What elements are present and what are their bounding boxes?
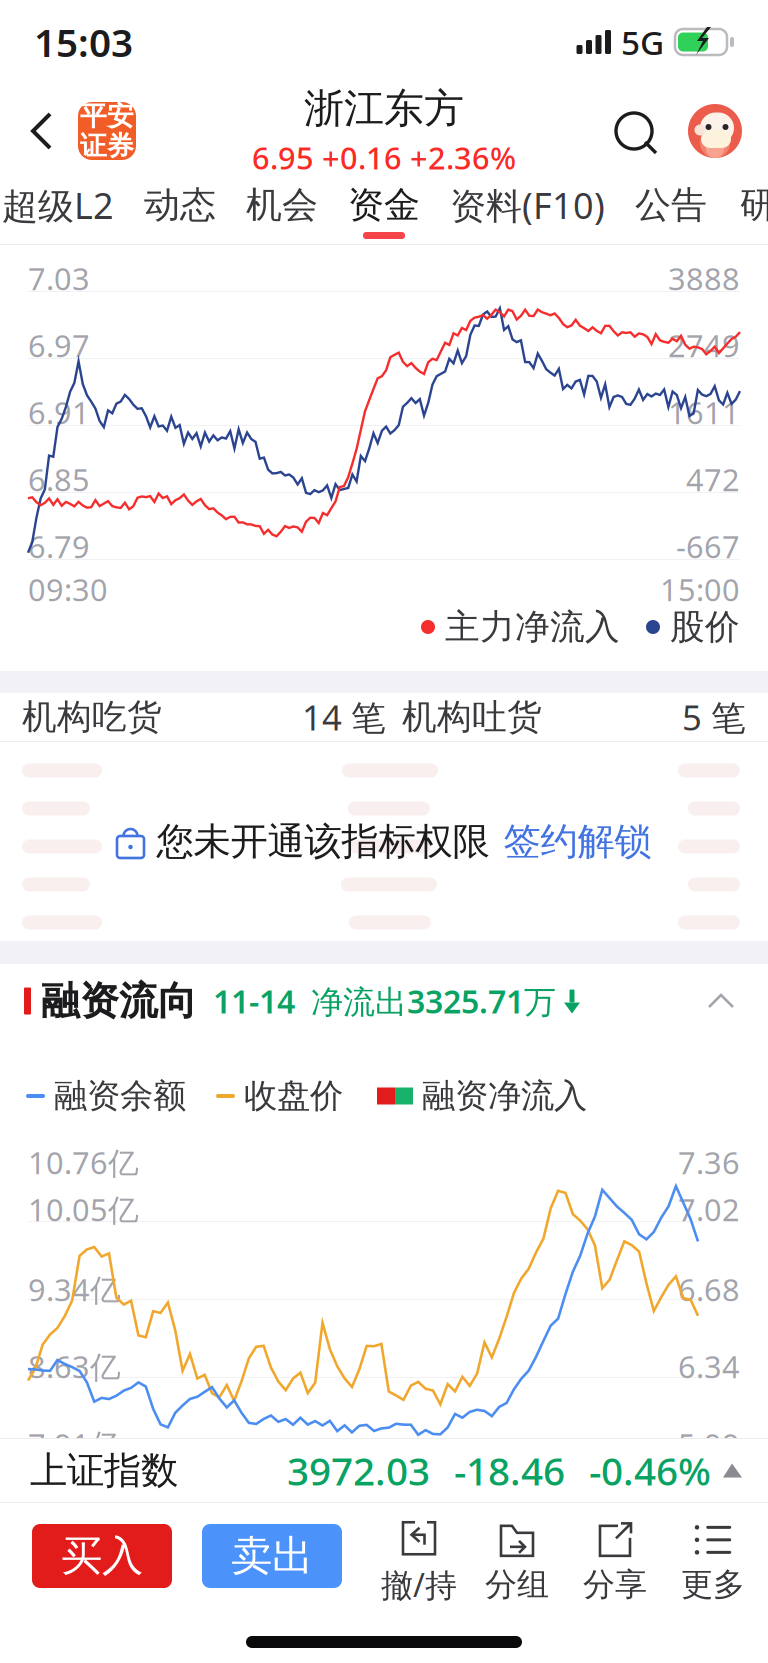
staticText: 卖出 [231,1531,313,1581]
staticText: 上证指数 [30,1448,178,1493]
button[interactable]: 公告 [620,178,722,244]
staticText: 分组 [485,1565,549,1604]
staticText: 6.85 [28,459,90,500]
staticText: 5.99 [678,1424,740,1465]
staticText: 10.76亿 [28,1142,139,1183]
staticText: 8.63亿 [28,1346,121,1387]
staticText: 7.91亿 [28,1424,121,1465]
staticText: 分享 [583,1565,647,1604]
staticText: 6.34 [678,1346,740,1387]
staticText: 机会 [246,183,318,227]
staticText: 7.36 [678,1142,740,1183]
button[interactable]: 研 [722,178,768,244]
staticText: 9.34亿 [28,1269,121,1310]
staticText: 7.03 [28,258,90,299]
staticText: 6.95 +0.16 +2.36% [252,137,516,178]
staticText: 14 笔 [302,694,386,740]
button[interactable]: 个人中心 [684,84,746,178]
staticText: 平安 [80,100,134,132]
staticText: 股价 [670,606,740,648]
staticText: 动态 [144,183,216,227]
staticText: 2749 [668,325,740,366]
staticText: -667 [676,526,740,567]
button[interactable]: 分组 [468,1512,566,1614]
staticText: 超级L2 [2,181,114,229]
button[interactable]: 买入 [32,1524,172,1602]
staticText: 更多 [681,1565,745,1604]
staticText: 您未开通该指标权限 [156,819,489,864]
staticText: 资料(F10) [450,181,605,229]
staticText: 15:00 [660,569,740,610]
button[interactable]: 搜索 [602,84,666,178]
staticText: 融资净流入 [422,1075,587,1116]
staticText: 浙江东方 [304,84,464,133]
staticText: -0.46% [589,1445,711,1496]
staticText: -18.46 [454,1445,565,1496]
button[interactable]: 撤/持 [370,1512,468,1614]
staticText: 6.79 [28,526,90,567]
staticText: 10.05亿 [28,1189,139,1230]
staticText: 6.68 [678,1269,740,1310]
button[interactable]: 资料(F10) [435,178,620,244]
staticText: 融资流向 [41,977,197,1025]
staticText: 3888 [668,258,740,299]
staticText: 7.02 [678,1189,740,1230]
staticText: 融资余额 [54,1075,186,1116]
button[interactable]: 更多 [664,1512,762,1614]
staticText: 签约解锁 [503,819,651,864]
staticText: 资金 [348,183,420,227]
staticText: 机构吐货 [402,696,542,738]
staticText: 472 [686,459,740,500]
button[interactable]: 签约解锁 [489,811,651,872]
staticText: 公告 [635,183,707,227]
staticText: 6.91 [28,392,90,433]
staticText: 11-14 [213,980,295,1022]
staticText: 5 笔 [682,694,746,740]
staticText: 1611 [668,392,740,433]
staticText: 研 [740,183,768,227]
staticText: 净流出3325.71万 [311,980,556,1022]
staticText: 09:30 [28,569,108,610]
button[interactable]: 分享 [566,1512,664,1614]
button[interactable]: 平安证券 [78,102,136,160]
button[interactable]: 返回 [14,84,69,178]
staticText: 6.97 [28,325,90,366]
staticText: 机构吃货 [22,696,162,738]
staticText: 5G [621,20,664,64]
button[interactable]: 机会 [231,178,333,244]
staticText: 买入 [61,1531,143,1581]
button[interactable]: 收起 [686,973,756,1029]
staticText: 15:03 [34,16,133,68]
staticText: 证券 [80,129,134,162]
staticText: 3972.03 [287,1445,430,1496]
staticText: 收盘价 [244,1075,343,1116]
button[interactable]: 动态 [129,178,231,244]
button[interactable]: 卖出 [172,1524,342,1602]
button[interactable]: 超级L2 [2,178,129,244]
button[interactable]: 资金 [333,178,435,244]
staticText: 撤/持 [381,1563,457,1606]
staticText: 主力净流入 [445,606,620,648]
